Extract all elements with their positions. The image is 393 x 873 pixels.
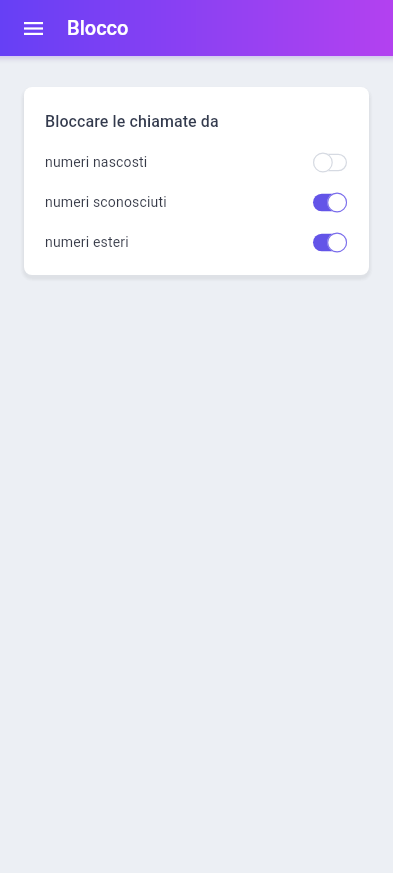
- button[interactable]: Open navigation menu: [12, 7, 54, 49]
- button[interactable]: numeri esteri: [24, 222, 369, 262]
- staticText: numeri esteri: [45, 234, 129, 250]
- staticText: numeri nascosti: [45, 154, 148, 170]
- staticText: Bloccare le chiamate da: [45, 112, 219, 131]
- staticText: Blocco: [67, 16, 129, 39]
- button[interactable]: numeri nascosti: [24, 142, 369, 182]
- button[interactable]: numeri sconosciuti: [24, 182, 369, 222]
- staticText: numeri sconosciuti: [45, 194, 167, 210]
